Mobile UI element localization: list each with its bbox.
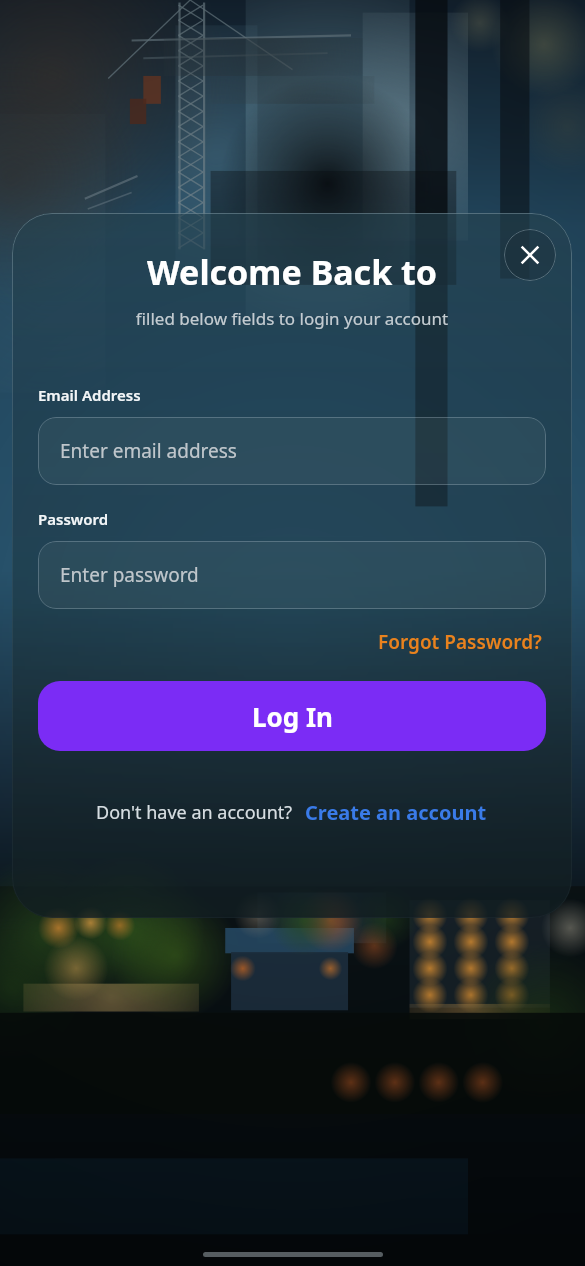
staticText: Enter password [60,562,199,588]
button[interactable]: Log In [38,681,546,751]
button[interactable]: Enter email address [38,417,546,485]
staticText: Password [38,509,109,529]
button[interactable]: Forgot Password? [374,625,546,659]
button[interactable]: Create an account [303,795,489,830]
staticText: filled below fields to login your accoun… [38,307,546,330]
staticText: Create an account [305,799,487,826]
staticText: Forgot Password? [378,629,542,655]
staticText: Welcome Back to [38,249,546,295]
staticText: Email Address [38,385,141,405]
staticText: Don't have an account? [96,800,293,825]
staticText: Log In [252,699,333,734]
button[interactable]: Enter password [38,541,546,609]
button[interactable]: Close [504,229,556,281]
staticText: Enter email address [60,438,237,464]
